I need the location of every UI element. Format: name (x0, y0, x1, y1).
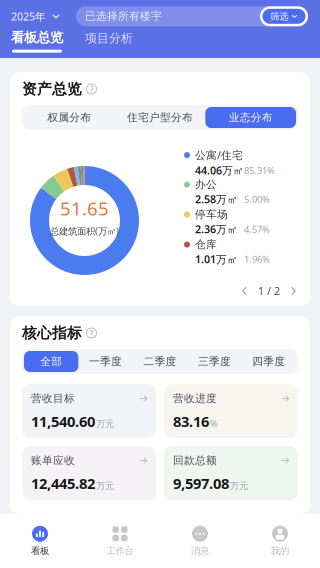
staticText: 83.16 (173, 411, 209, 431)
staticText: 回款总额 (173, 454, 217, 467)
button[interactable]: 三季度 (187, 351, 242, 372)
staticText: 12,445.82 (31, 473, 95, 493)
staticText: 9,597.08 (173, 473, 229, 493)
staticText: 二季度 (143, 355, 176, 368)
staticText: 4.57% (244, 223, 270, 235)
staticText: % (210, 417, 218, 429)
staticText: 项目分析 (85, 31, 133, 46)
button[interactable]: 一季度 (78, 351, 133, 372)
staticText: 万元 (230, 480, 248, 492)
button[interactable]: 上一页 (240, 284, 249, 297)
staticText: 权属分布 (47, 111, 91, 124)
staticText: 营收目标 (31, 392, 75, 405)
button[interactable]: 全部 (24, 351, 78, 372)
button[interactable]: 账单应收 (22, 446, 156, 500)
staticText: 一季度 (89, 355, 122, 368)
button[interactable]: 看板 (0, 514, 80, 568)
staticText: 住宅户型分布 (127, 111, 193, 124)
staticText: 1 / 2 (258, 284, 280, 298)
staticText: 消息 (191, 545, 209, 557)
button[interactable]: 2025年 (10, 4, 76, 28)
staticText: 筛选 (270, 11, 288, 22)
staticText: 停车场 (195, 208, 228, 221)
staticText: 看板 (31, 545, 49, 557)
staticText: 85.31% (244, 164, 275, 176)
button[interactable]: 我的 (240, 514, 320, 568)
staticText: 办公 (195, 178, 217, 191)
staticText: 51.65 (60, 196, 109, 221)
button[interactable]: 营收目标 (22, 384, 156, 438)
staticText: 11,540.60 (31, 411, 95, 431)
button[interactable]: 看板总览 (11, 29, 63, 53)
staticText: 四季度 (252, 355, 285, 368)
staticText: 看板总览 (11, 29, 63, 46)
staticText: 1.96% (244, 253, 270, 265)
staticText: 我的 (271, 545, 289, 557)
button[interactable]: 筛选 (260, 6, 308, 26)
button[interactable]: 项目分析 (84, 31, 134, 53)
staticText: 2025年 (11, 9, 46, 23)
button[interactable]: 业态分布 (205, 107, 296, 128)
staticText: 全部 (40, 355, 62, 368)
staticText: 业态分布 (229, 111, 273, 124)
staticText: 仓库 (195, 238, 217, 251)
staticText: 核心指标 (22, 324, 82, 342)
staticText: 万元 (96, 480, 114, 492)
staticText: 2.36万㎡ (195, 222, 238, 236)
staticText: ? (89, 83, 93, 95)
button[interactable]: 四季度 (242, 351, 296, 372)
staticText: ? (89, 327, 93, 339)
staticText: 工作台 (106, 545, 133, 557)
staticText: 万元 (96, 418, 114, 430)
button[interactable]: 住宅户型分布 (115, 107, 205, 128)
staticText: 总建筑面积(万㎡) (50, 225, 119, 237)
staticText: 账单应收 (31, 454, 75, 467)
staticText: 资产总览 (22, 80, 82, 98)
staticText: 5.00% (244, 193, 270, 205)
staticText: 44.06万㎡ (195, 163, 244, 177)
button[interactable]: 工作台 (80, 514, 160, 568)
button[interactable]: 回款总额 (164, 446, 298, 500)
button[interactable]: 二季度 (133, 351, 187, 372)
staticText: 2.58万㎡ (195, 192, 238, 206)
staticText: 三季度 (198, 355, 231, 368)
staticText: 已选择所有楼宇 (85, 10, 162, 23)
button[interactable]: 营收进度 (164, 384, 298, 438)
staticText: 1.01万㎡ (195, 252, 238, 266)
button[interactable]: 下一页 (289, 284, 298, 297)
staticText: 公寓/住宅 (195, 148, 243, 162)
staticText: 营收进度 (173, 392, 217, 405)
button[interactable]: 权属分布 (24, 107, 115, 128)
button[interactable]: 消息 (160, 514, 240, 568)
